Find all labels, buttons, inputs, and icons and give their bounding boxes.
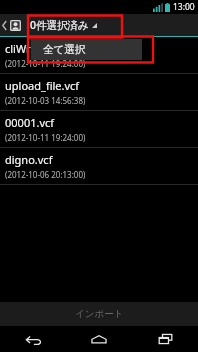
button[interactable]: Recent apps xyxy=(132,326,198,352)
staticText: upload_file.vcf xyxy=(5,78,80,93)
button[interactable]: Navigate up xyxy=(0,14,24,36)
staticText: digno.vcf xyxy=(5,152,53,167)
staticText: 0件選択済み xyxy=(30,18,89,32)
button[interactable]: 全て選択 xyxy=(31,39,142,60)
button[interactable]: 00001.vcf xyxy=(0,111,198,147)
button[interactable]: インポート xyxy=(0,302,198,326)
staticText: (2012-10-03 14:56:38) xyxy=(5,95,86,106)
button[interactable]: upload_file.vcf xyxy=(0,74,198,110)
staticText: 00001.vcf xyxy=(5,115,55,130)
staticText: (2012-10-11 19:24:00) xyxy=(5,58,86,69)
staticText: cliWrF xyxy=(5,41,37,56)
button[interactable]: digno.vcf xyxy=(0,148,198,184)
button[interactable]: cliWrF xyxy=(0,37,198,73)
staticText: (2012-10-11 19:24:00) xyxy=(5,132,86,143)
staticText: 全て選択 xyxy=(43,43,86,56)
button[interactable]: Back xyxy=(0,326,66,352)
button[interactable]: 0件選択済み xyxy=(28,14,99,36)
staticText: インポート xyxy=(75,308,124,320)
staticText: (2012-10-06 20:13:00) xyxy=(5,169,86,180)
button[interactable]: Home xyxy=(66,326,132,352)
staticText: 13:00 xyxy=(173,1,195,13)
